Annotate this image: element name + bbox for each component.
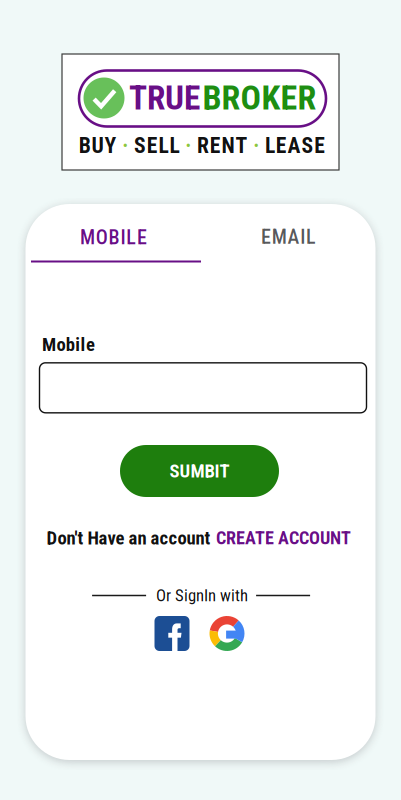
staticText: EMAIL [261,225,316,249]
staticText: Don't Have an account [46,527,210,549]
staticText: TRUE [129,78,200,118]
staticText: BROKER [202,78,316,118]
button[interactable]: CREATE ACCOUNT [213,526,353,550]
button[interactable]: EMAIL [200,204,375,274]
button[interactable]: Sign in with Facebook [154,616,189,651]
staticText: Mobile [42,334,95,355]
staticText: Or SignIn with [156,586,248,605]
staticText: SELL [134,133,179,158]
staticText: · [179,133,197,158]
staticText: BUY [79,133,116,158]
staticText: CREATE ACCOUNT [216,527,351,549]
button[interactable]: Sign in with Google [209,616,244,651]
staticText: RENT [197,133,247,158]
staticText: · [247,133,265,158]
staticText: SUMBIT [169,460,229,482]
staticText: MOBILE [80,226,147,249]
staticText: · [116,133,134,158]
button[interactable]: MOBILE [30,204,205,274]
staticText: LEASE [265,133,325,158]
button[interactable]: SUMBIT [120,445,279,497]
